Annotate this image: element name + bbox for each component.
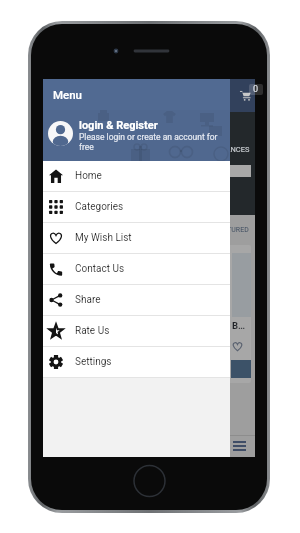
staticText: Share (75, 294, 101, 306)
button[interactable]: B… (155, 245, 251, 383)
button[interactable]: Open navigation drawer (49, 89, 62, 102)
staticText: FEATURED (215, 226, 249, 234)
staticText: APPLIANCES (205, 145, 250, 154)
staticText: Please login or create an account for fr… (79, 132, 224, 152)
button[interactable]: Rate Us (43, 316, 230, 347)
button[interactable]: Settings (43, 347, 230, 378)
staticText: B… (232, 320, 246, 331)
button[interactable]: More (233, 440, 246, 453)
button[interactable]: Categories (43, 192, 230, 223)
staticText: Rate Us (75, 325, 110, 337)
staticText: Home (75, 170, 102, 182)
staticText: Settings (75, 356, 112, 368)
button[interactable]: My Wish List (43, 223, 230, 254)
staticText: My Wish List (75, 232, 132, 244)
button[interactable]: Home (43, 161, 230, 192)
staticText: login & Register (79, 119, 158, 132)
staticText: 0 (253, 84, 259, 95)
staticText: Menu (53, 88, 83, 101)
button[interactable]: Share (43, 285, 230, 316)
staticText: Contact Us (75, 263, 125, 275)
staticText: Categories (75, 201, 124, 213)
button[interactable]: Contact Us (43, 254, 230, 285)
button[interactable]: Shopping cart (239, 89, 252, 102)
